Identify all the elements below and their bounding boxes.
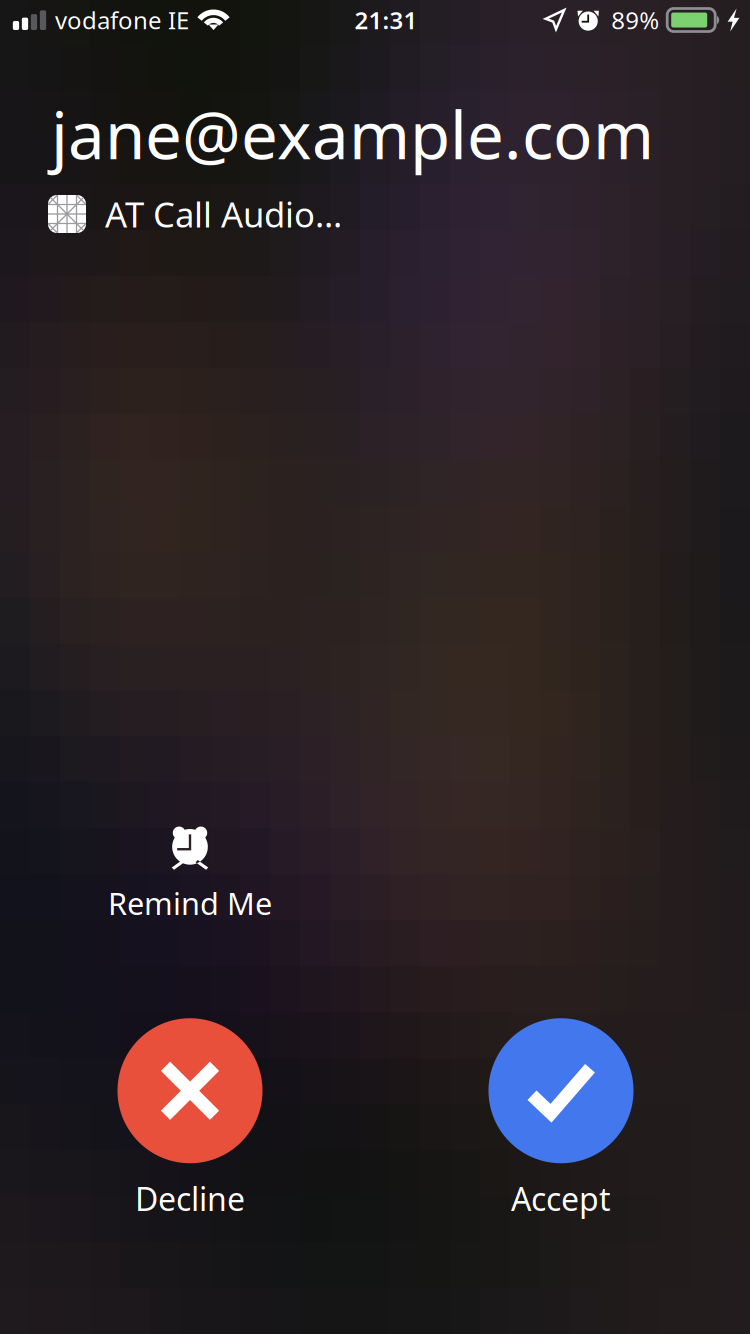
staticText: AT Call Audio...: [105, 191, 342, 237]
staticText: Accept: [511, 1177, 611, 1220]
staticText: vodafone IE: [55, 4, 189, 36]
staticText: 21:31: [355, 4, 418, 36]
staticText: jane@example.com: [51, 91, 654, 177]
button[interactable]: Accept: [441, 1018, 681, 1220]
button[interactable]: Decline: [70, 1018, 310, 1220]
staticText: Remind Me: [108, 883, 272, 923]
staticText: Decline: [135, 1177, 245, 1220]
staticText: 89%: [611, 4, 659, 36]
button[interactable]: Remind Me: [60, 825, 320, 923]
